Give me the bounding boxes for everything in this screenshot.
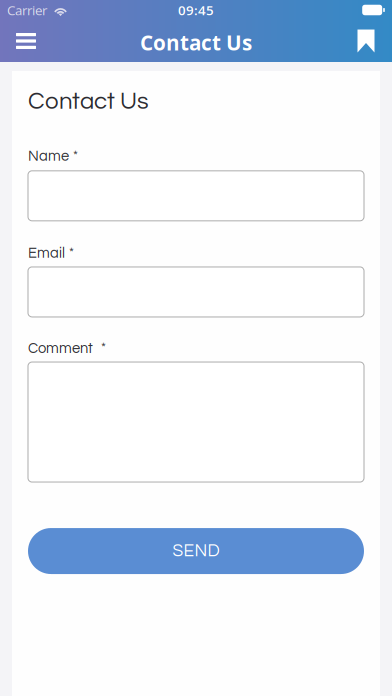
staticText: Carrier <box>7 1 47 19</box>
staticText: * <box>73 149 78 162</box>
staticText: Comment <box>28 341 93 356</box>
staticText: * <box>101 341 106 355</box>
button[interactable]: Menu <box>2 20 50 62</box>
button[interactable]: SEND <box>28 528 364 574</box>
staticText: Contact Us <box>28 89 149 114</box>
button[interactable]: Bookmark <box>342 20 390 62</box>
staticText: Contact Us <box>140 28 252 56</box>
staticText: * <box>69 246 74 259</box>
staticText: Name <box>28 149 69 164</box>
staticText: 09:45 <box>178 1 214 19</box>
staticText: Email <box>28 246 65 261</box>
staticText: SEND <box>172 542 219 560</box>
